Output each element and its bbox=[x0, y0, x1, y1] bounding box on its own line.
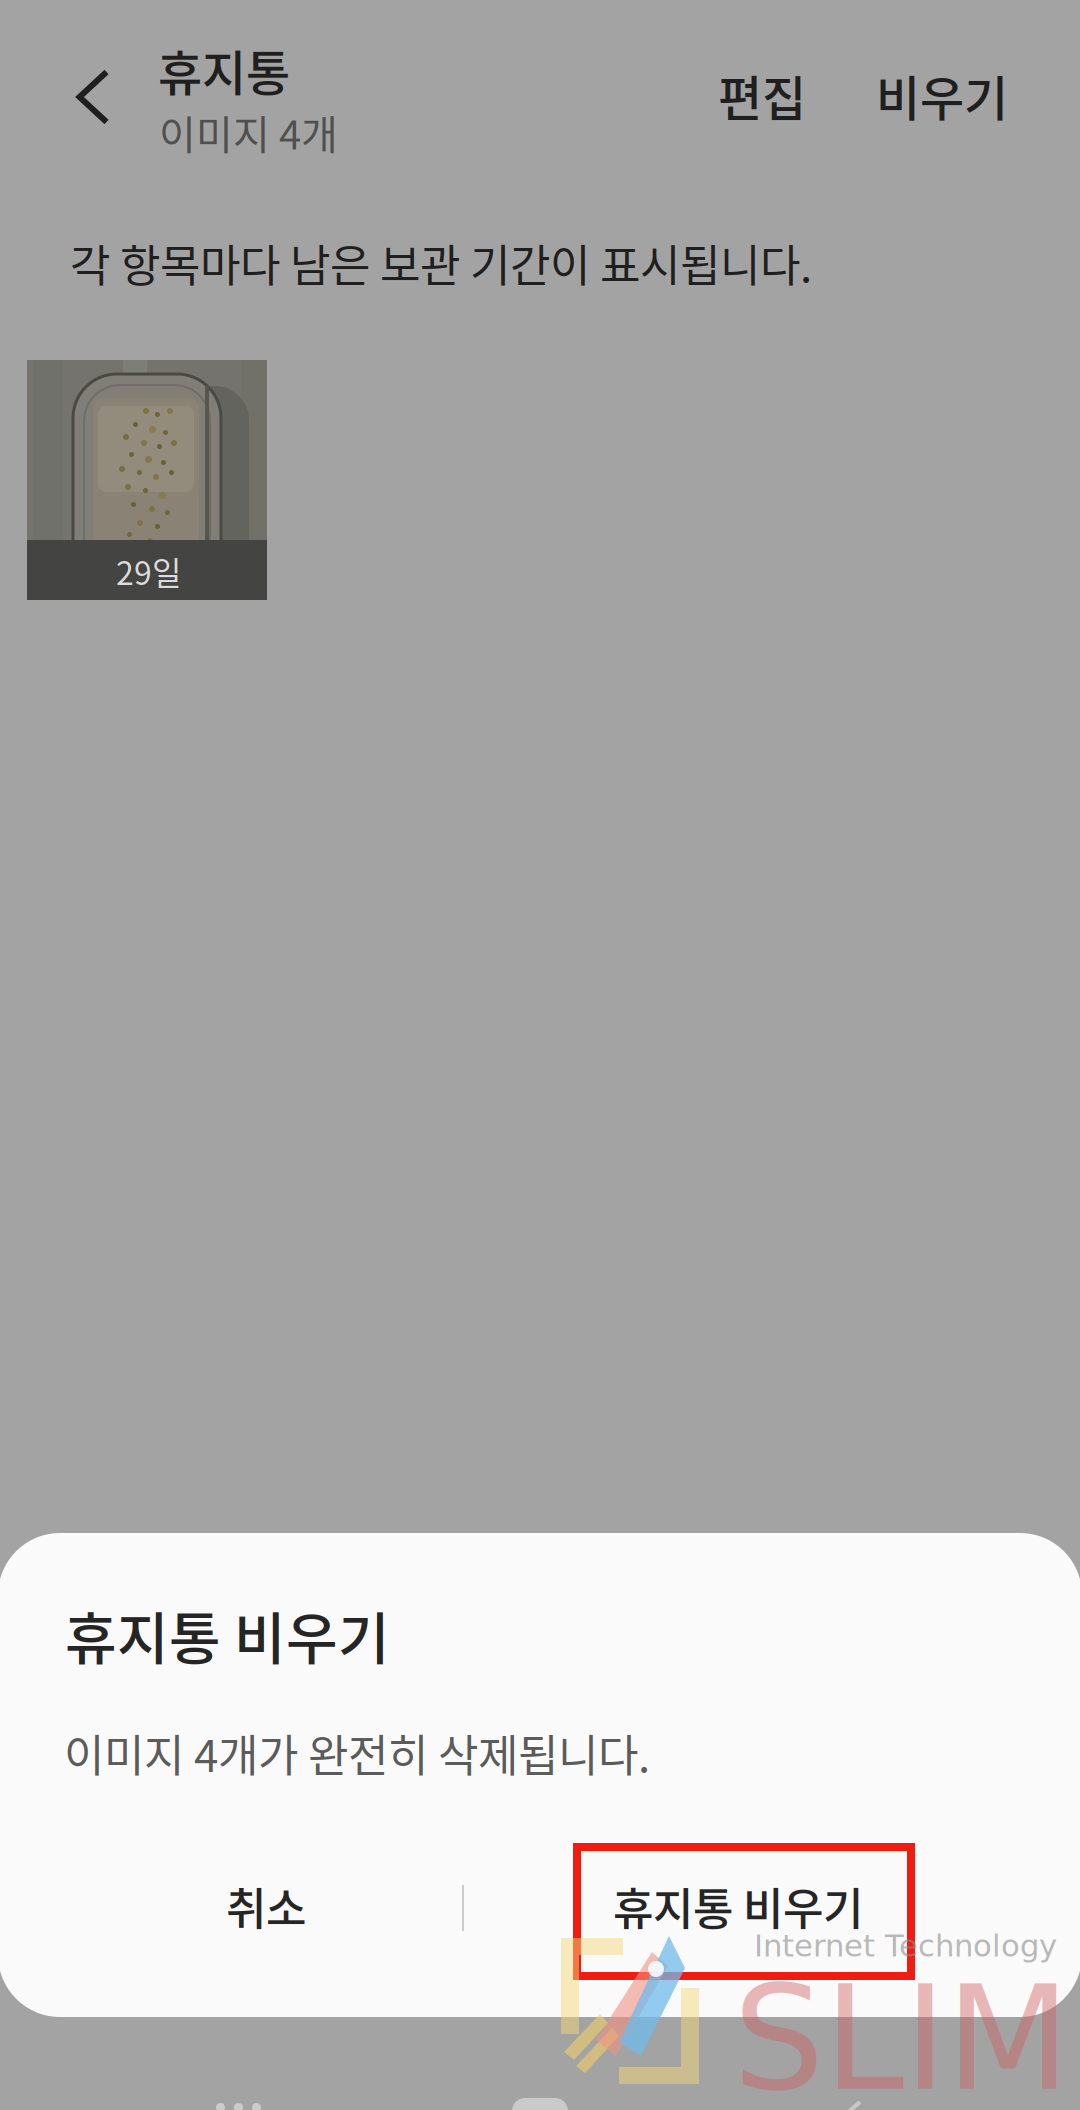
staticText: SLIM bbox=[733, 1955, 1070, 2110]
button[interactable]: 휴지통 비우기 bbox=[462, 1838, 1014, 1974]
staticText: 취소 bbox=[226, 1874, 306, 1938]
button[interactable]: 취소 bbox=[50, 1838, 482, 1974]
staticText: 비우기 bbox=[876, 60, 1008, 130]
staticText: Internet Technology bbox=[754, 1928, 1057, 1964]
staticText: 휴지통 비우기 bbox=[613, 1874, 863, 1938]
staticText: 편집 bbox=[718, 60, 806, 130]
staticText: 휴지통 bbox=[158, 35, 290, 104]
staticText: 이미지 4개가 완전히 삭제됩니다. bbox=[64, 1721, 650, 1785]
button[interactable]: 편집 bbox=[700, 39, 824, 151]
staticText: 이미지 4개 bbox=[159, 103, 338, 161]
staticText: 각 항목마다 남은 보관 기간이 표시됩니다. bbox=[70, 231, 812, 295]
button[interactable]: 비우기 bbox=[857, 39, 1027, 151]
button[interactable]: 뒤로 bbox=[38, 37, 148, 157]
staticText: 29일 bbox=[116, 548, 181, 594]
staticText: 휴지통 비우기 bbox=[65, 1594, 390, 1675]
button[interactable]: 이미지, 29일 남음 bbox=[27, 360, 267, 600]
